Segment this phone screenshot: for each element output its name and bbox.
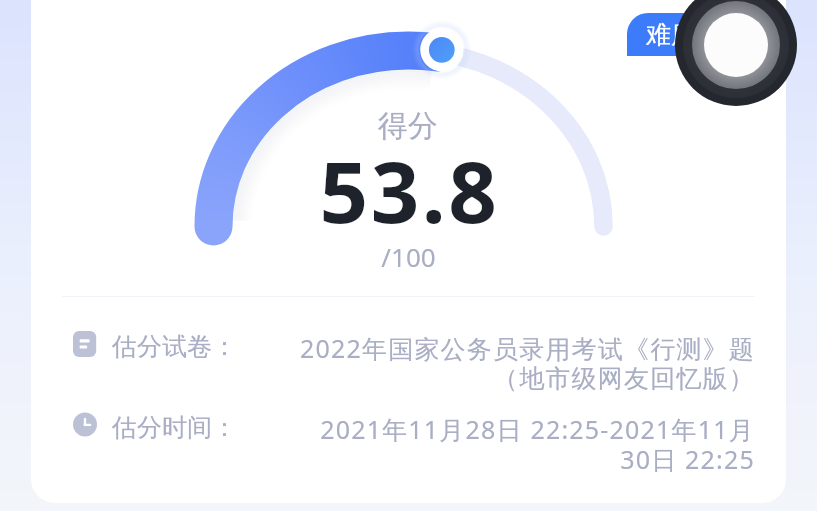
button[interactable]: 估分时间：	[73, 412, 755, 476]
button[interactable]: 难度：易	[627, 13, 787, 56]
staticText: 2021年11月28日 22:25-2021年11月 30日 22:25	[320, 412, 755, 476]
staticText: 难度：易	[646, 19, 746, 50]
staticText: 53.8	[319, 132, 500, 248]
staticText: 估分时间：	[112, 412, 237, 443]
button[interactable]: 估分试卷：	[73, 331, 755, 394]
staticText: 估分试卷：	[112, 331, 237, 362]
staticText: 2022年国家公务员录用考试《行测》题 （地市级网友回忆版）	[299, 331, 755, 394]
staticText: /100	[381, 239, 436, 274]
staticText: 得分	[378, 107, 438, 145]
